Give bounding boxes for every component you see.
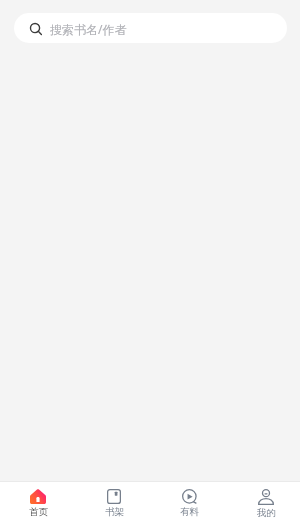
button[interactable]: 首页 xyxy=(0,482,76,520)
staticText: 首页 xyxy=(29,506,48,518)
staticText: 搜索书名/作者 xyxy=(50,21,127,37)
button[interactable]: 书架 xyxy=(76,482,152,520)
staticText: 有料 xyxy=(180,506,199,518)
button[interactable]: 搜索书名/作者 xyxy=(14,13,287,43)
staticText: 我的 xyxy=(257,507,276,519)
staticText: 书架 xyxy=(105,506,124,518)
button[interactable]: 有料 xyxy=(151,482,227,520)
button[interactable]: 我的 xyxy=(228,482,300,520)
